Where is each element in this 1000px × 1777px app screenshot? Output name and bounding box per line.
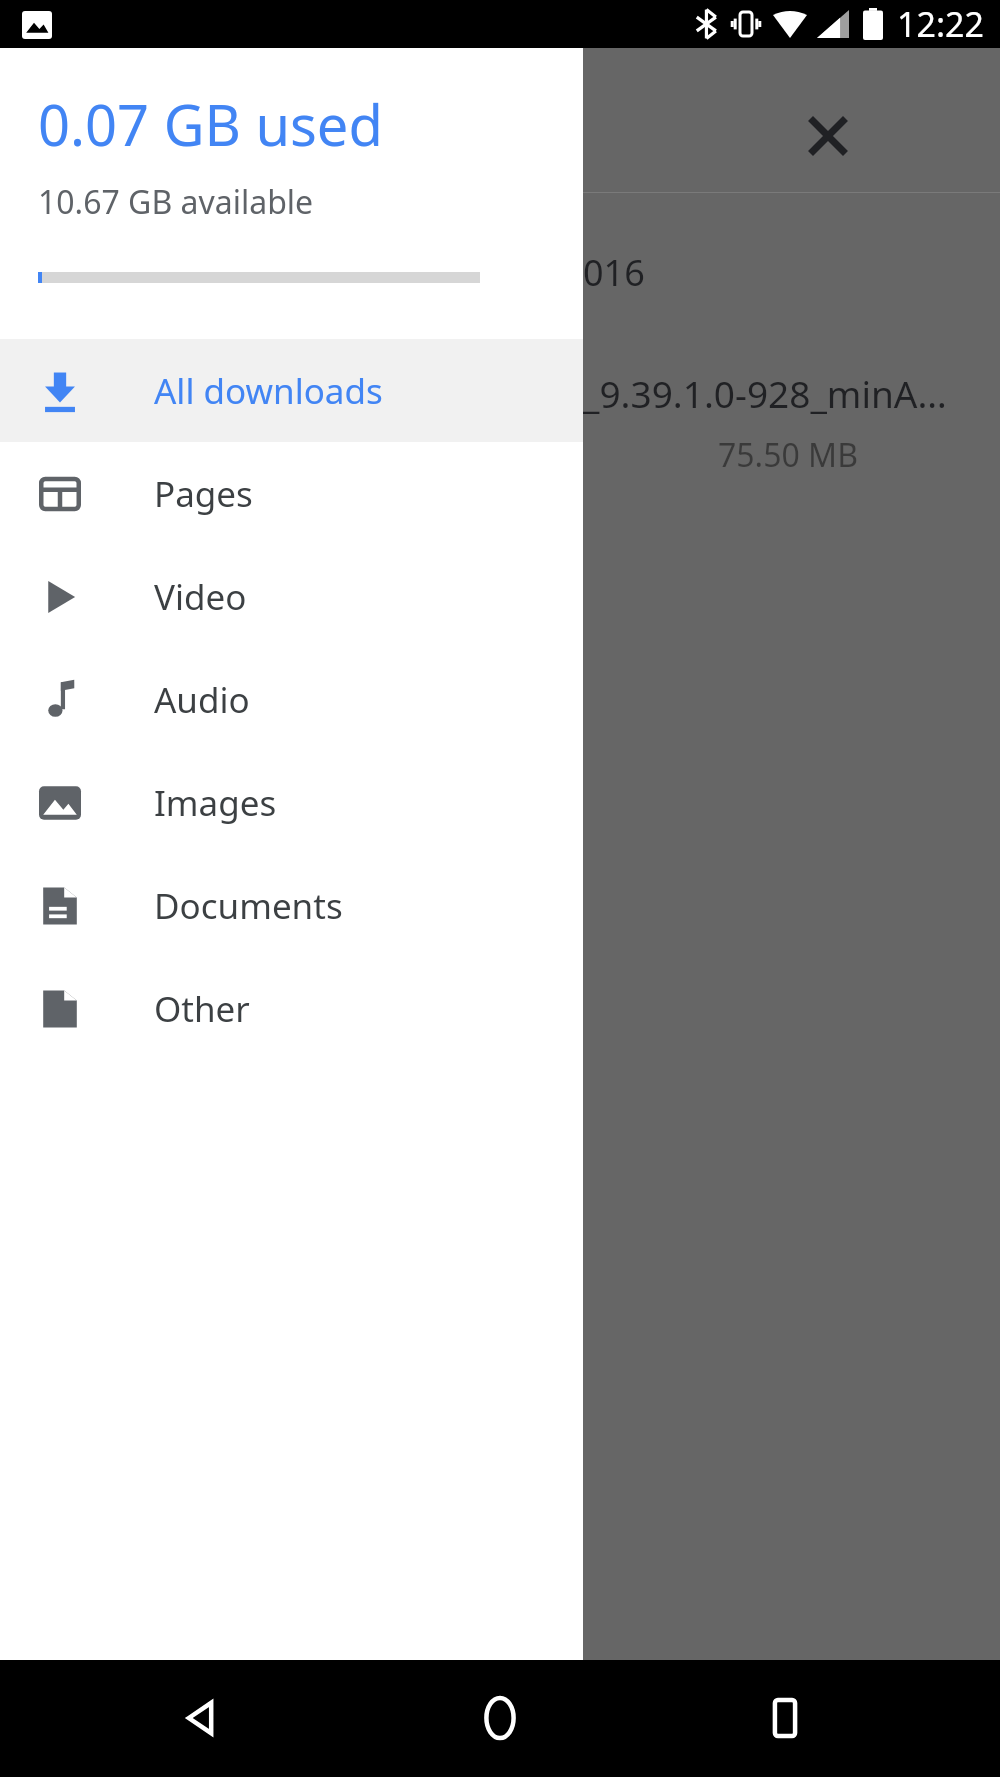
button[interactable]: Pages [0,442,583,545]
button[interactable]: All downloads [0,339,583,442]
staticText: 12:22 [897,1,984,47]
button[interactable]: Documents [0,854,583,957]
staticText: All downloads [154,367,383,415]
staticText: 016 [583,248,645,297]
button[interactable]: Images [0,751,583,854]
button[interactable]: Audio [0,648,583,751]
staticText: 75.50 MB [718,433,858,477]
button[interactable]: Close [772,80,884,192]
staticText: Pages [154,470,253,518]
button[interactable]: Other [0,957,583,1060]
button[interactable]: Video [0,545,583,648]
button[interactable]: Home [460,1678,540,1758]
staticText: Audio [154,676,250,724]
staticText: _9.39.1.0-928_minA… [583,368,947,418]
staticText: 10.67 GB available [38,180,314,224]
staticText: Images [154,779,277,827]
button[interactable]: Back [160,1678,240,1758]
staticText: Video [154,573,247,621]
button[interactable]: Recent apps [745,1678,825,1758]
staticText: Other [154,985,250,1033]
staticText: 0.07 GB used [38,86,383,162]
staticText: Documents [154,882,343,930]
